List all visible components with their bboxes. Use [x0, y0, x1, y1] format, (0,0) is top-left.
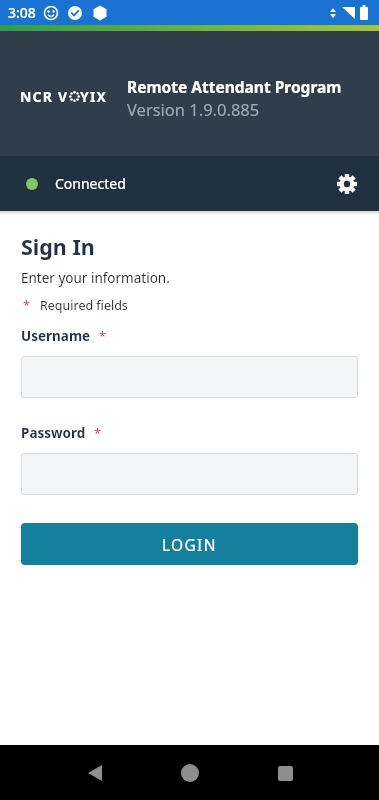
staticText: YIX — [80, 87, 108, 106]
button[interactable] — [21, 356, 358, 398]
staticText: Remote Attendant Program — [127, 76, 342, 97]
staticText: * — [94, 424, 102, 442]
staticText: Version 1.9.0.885 — [127, 98, 260, 120]
staticText: Username — [21, 327, 91, 345]
staticText: NCR V — [20, 87, 69, 106]
button[interactable]: LOGIN — [21, 523, 358, 565]
button[interactable] — [75, 753, 115, 793]
staticText: * — [99, 327, 107, 345]
button[interactable] — [265, 753, 305, 793]
staticText: Sign In — [21, 232, 95, 261]
staticText: LOGIN — [162, 534, 217, 555]
staticText: Enter your information. — [21, 269, 170, 287]
staticText: Required fields — [40, 297, 128, 314]
staticText: * — [23, 296, 31, 314]
button[interactable] — [21, 453, 358, 495]
staticText: Password — [21, 424, 86, 442]
button[interactable] — [327, 164, 367, 204]
staticText: Connected — [55, 174, 126, 193]
staticText: 3:08 — [8, 3, 36, 22]
button[interactable] — [170, 753, 210, 793]
